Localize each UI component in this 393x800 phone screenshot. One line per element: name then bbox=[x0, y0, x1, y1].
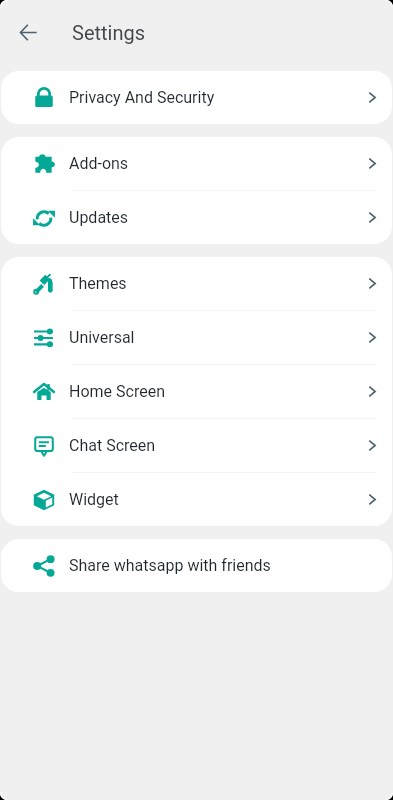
staticText: Universal bbox=[69, 328, 135, 347]
button[interactable]: Universal bbox=[1, 311, 392, 364]
button[interactable]: Chat Screen bbox=[1, 419, 392, 472]
button[interactable]: Themes bbox=[1, 257, 392, 310]
staticText: Share whatsapp with friends bbox=[69, 556, 271, 575]
button[interactable]: Widget bbox=[1, 473, 392, 526]
staticText: Widget bbox=[69, 490, 119, 509]
button[interactable]: Share whatsapp with friends bbox=[1, 539, 392, 592]
button[interactable]: Updates bbox=[1, 191, 392, 244]
staticText: Themes bbox=[69, 274, 127, 293]
staticText: Settings bbox=[72, 21, 146, 44]
staticText: Privacy And Security bbox=[69, 88, 215, 107]
button[interactable]: Home Screen bbox=[1, 365, 392, 418]
button[interactable]: Back bbox=[8, 12, 48, 52]
button[interactable]: Privacy And Security bbox=[1, 71, 392, 124]
staticText: Chat Screen bbox=[69, 436, 156, 455]
staticText: Updates bbox=[69, 208, 129, 227]
staticText: Add-ons bbox=[69, 154, 129, 173]
button[interactable]: Add-ons bbox=[1, 137, 392, 190]
staticText: Home Screen bbox=[69, 382, 165, 401]
